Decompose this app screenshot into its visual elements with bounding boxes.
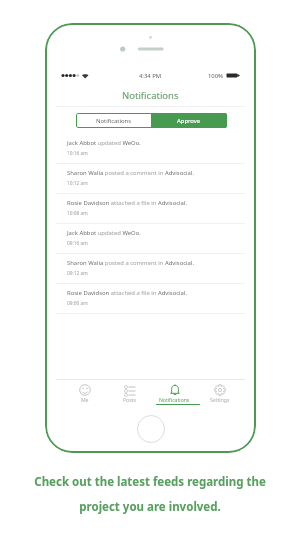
button[interactable]: Sharon Walia posted a comment in Advisoc… — [56, 254, 245, 284]
staticText: Rosie Davidson attached a file in Adviso… — [67, 289, 188, 297]
staticText: Rosie Davidson attached a file in Adviso… — [67, 199, 188, 207]
staticText: 09:16 am — [67, 240, 88, 247]
staticText: Jack Abbot updated WeOo. — [67, 229, 141, 237]
staticText: Notifications — [159, 397, 190, 404]
button[interactable]: Rosie Davidson attached a file in Adviso… — [56, 284, 245, 314]
staticText: Me — [81, 397, 89, 404]
staticText: Sharon Walia posted a comment in Advisoc… — [67, 169, 194, 177]
staticText: Jack Abbot updated WeOo. — [67, 139, 141, 147]
staticText: Notifications — [122, 89, 179, 102]
button[interactable]: Posts — [107, 380, 152, 405]
button[interactable]: Jack Abbot updated WeOo. — [56, 224, 245, 254]
staticText: Sharon Walia posted a comment in Advisoc… — [67, 259, 194, 267]
staticText: 4:34 PM — [139, 72, 162, 80]
button[interactable]: Me — [63, 380, 107, 405]
button[interactable]: Rosie Davidson attached a file in Adviso… — [56, 194, 245, 224]
button[interactable]: Approve — [151, 113, 227, 128]
staticText: Notifications — [96, 117, 132, 125]
staticText: 10:16 am — [67, 150, 88, 157]
button[interactable]: Notifications — [76, 113, 151, 128]
button[interactable]: Sharon Walia posted a comment in Advisoc… — [56, 164, 245, 194]
staticText: Check out the latest feeds regarding the — [34, 474, 266, 490]
button[interactable]: Settings — [197, 380, 242, 405]
staticText: Settings — [210, 397, 230, 404]
staticText: project you are involved. — [79, 499, 221, 515]
staticText: 09:12 am — [67, 270, 88, 277]
staticText: 09:00 am — [67, 300, 88, 307]
staticText: 10:12 am — [67, 180, 88, 187]
button[interactable]: Jack Abbot updated WeOo. — [56, 134, 245, 164]
staticText: Posts — [123, 397, 136, 404]
button[interactable]: Notifications — [152, 380, 197, 405]
staticText: 100% — [208, 72, 224, 80]
staticText: Approve — [177, 117, 201, 125]
staticText: 10:08 am — [67, 210, 88, 217]
